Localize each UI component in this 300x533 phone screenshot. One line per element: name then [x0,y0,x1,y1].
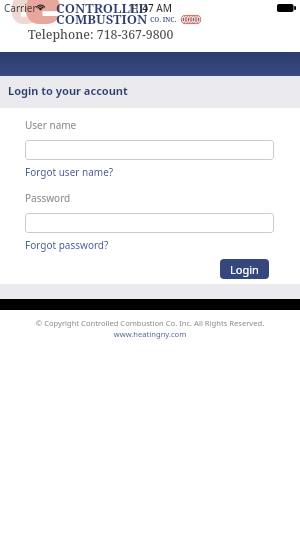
button[interactable]: Forgot user name? [25,165,114,179]
staticText: Carrier [4,1,37,15]
staticText: Telephone: 718-367-9800 [28,26,174,43]
staticText: User name [25,118,77,132]
other: Battery [277,4,296,12]
button[interactable]: Login [220,259,269,279]
staticText: Login [230,262,259,277]
button[interactable]: www.heatingny.com [0,329,300,339]
other: Wi-Fi [36,4,45,10]
staticText: © Copyright Controlled Combustion Co. In… [0,318,300,328]
staticText: COMBUSTION [56,10,148,28]
staticText: Login to your account [8,83,128,98]
button[interactable]: Forgot password? [25,238,109,252]
button[interactable] [25,213,274,233]
staticText: CO. INC. [150,15,177,24]
staticText: 11:47 AM [0,1,300,15]
staticText: CONTROLLED [56,0,149,17]
staticText: Password [25,191,71,205]
button[interactable] [25,140,274,160]
